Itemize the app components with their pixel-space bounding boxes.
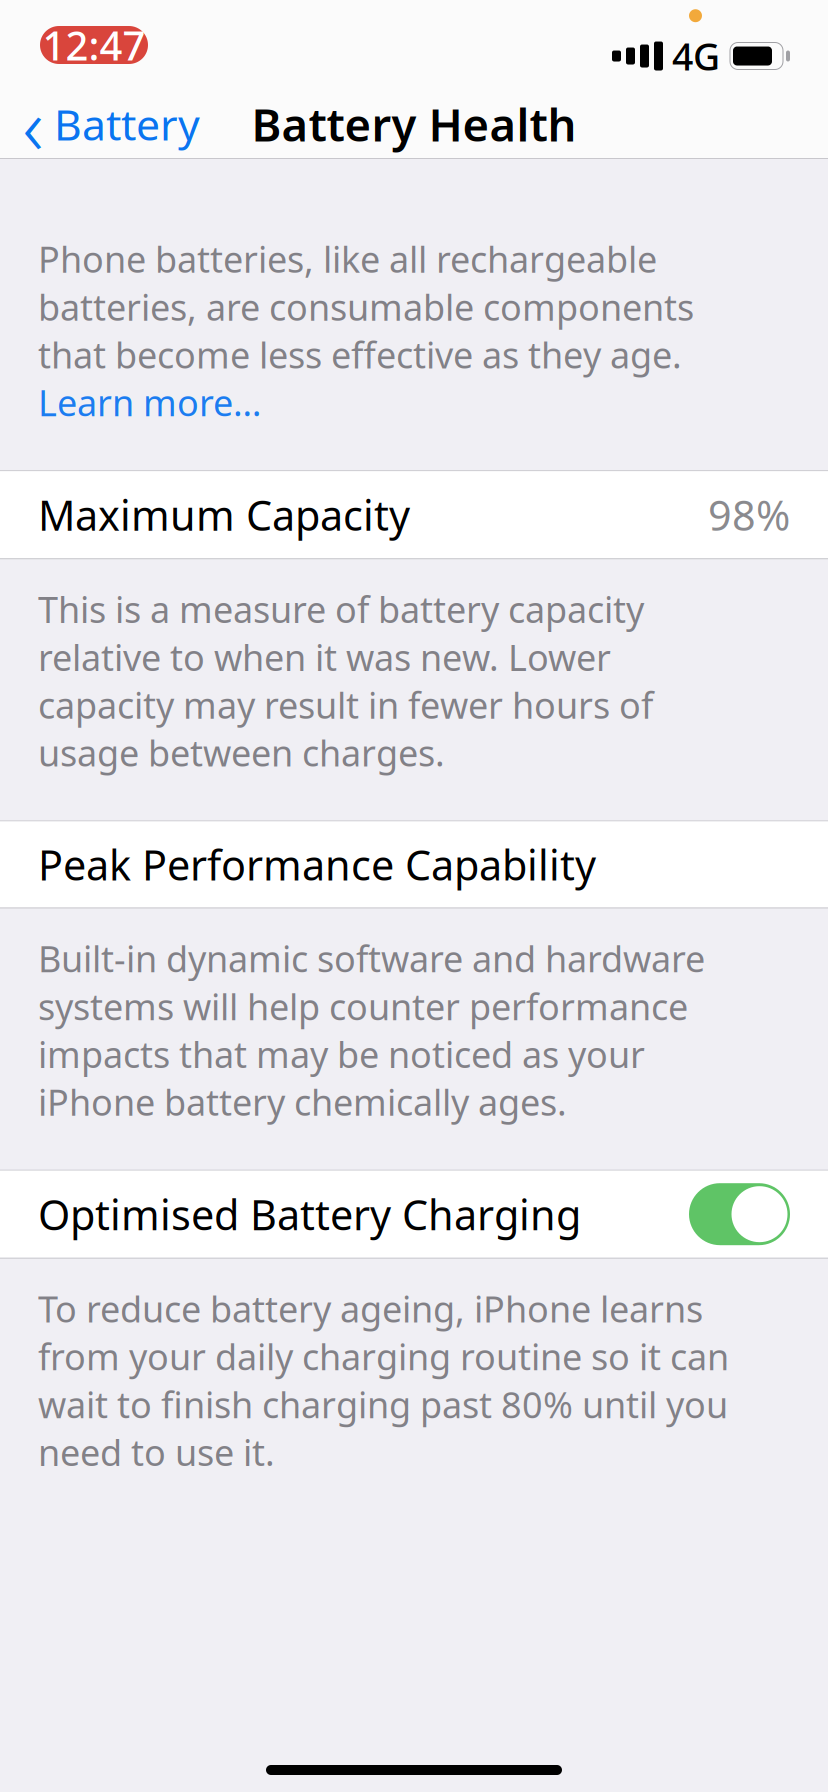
staticText: Maximum Capacity bbox=[38, 487, 410, 542]
staticText: 4G bbox=[672, 31, 720, 81]
staticText: 98% bbox=[708, 487, 790, 542]
staticText: To reduce battery ageing, iPhone learns … bbox=[38, 1285, 729, 1476]
staticText: Battery Health bbox=[251, 94, 576, 154]
staticText: Phone batteries, like all rechargeable b… bbox=[38, 235, 694, 378]
staticText: Built-in dynamic software and hardware s… bbox=[38, 934, 705, 1126]
button[interactable]: Optimised Battery Charging bbox=[0, 1171, 828, 1258]
button[interactable]: Peak Performance Capability bbox=[0, 821, 828, 907]
staticText: Battery bbox=[54, 96, 200, 152]
button[interactable]: Back to Battery bbox=[0, 90, 200, 158]
button[interactable]: Maximum Capacity bbox=[0, 471, 828, 558]
staticText: 12:47 bbox=[42, 18, 145, 71]
staticText: Peak Performance Capability bbox=[38, 837, 596, 892]
staticText: Optimised Battery Charging bbox=[38, 1187, 581, 1242]
staticText: ‹ bbox=[22, 71, 43, 177]
staticText: This is a measure of battery capacity re… bbox=[38, 585, 653, 776]
staticText: Learn more… bbox=[38, 378, 261, 426]
